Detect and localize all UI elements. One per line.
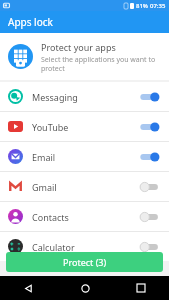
button[interactable]: Off — [139, 240, 161, 254]
button[interactable]: Back — [0, 276, 57, 300]
button[interactable]: Calculator — [0, 232, 169, 261]
button[interactable]: Email — [0, 142, 169, 171]
button[interactable]: Messaging — [0, 82, 169, 111]
staticText: Gmail — [32, 181, 139, 193]
staticText: Protect your apps — [41, 41, 116, 53]
button[interactable]: Off — [139, 210, 161, 224]
staticText: YouTube — [32, 121, 139, 133]
button[interactable]: Protect (3) — [6, 252, 163, 272]
button[interactable]: On — [139, 90, 161, 104]
staticText: Apps lock — [8, 15, 53, 29]
staticText: Protect (3) — [63, 256, 107, 268]
staticText: Email — [32, 151, 139, 163]
button[interactable]: Contacts — [0, 202, 169, 231]
staticText: 07:35 — [150, 2, 166, 10]
button[interactable]: Home — [57, 276, 113, 300]
button[interactable]: Protect your apps — [0, 33, 169, 80]
staticText: Select the applications you want to prot… — [41, 55, 161, 73]
button[interactable]: On — [139, 120, 161, 134]
button[interactable]: Gmail — [0, 172, 169, 201]
button[interactable]: YouTube — [0, 112, 169, 141]
staticText: 81% — [136, 2, 148, 10]
button[interactable]: On — [139, 150, 161, 164]
staticText: Calculator — [32, 241, 139, 253]
staticText: Messaging — [32, 91, 139, 103]
staticText: Contacts — [32, 211, 139, 223]
button[interactable]: Off — [139, 180, 161, 194]
button[interactable]: Recents — [113, 276, 169, 300]
